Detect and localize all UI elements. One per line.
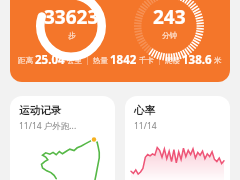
staticText: 距离: [18, 56, 33, 65]
staticText: 米: [214, 56, 222, 65]
staticText: 138.6: [182, 52, 212, 68]
staticText: 33623: [44, 4, 99, 30]
staticText: 爬楼: [165, 56, 180, 65]
button[interactable]: 分钟: [132, 0, 206, 63]
staticText: 心率: [134, 104, 155, 117]
staticText: 运动记录: [19, 104, 61, 117]
staticText: 11/14: [134, 120, 157, 132]
staticText: 1842: [110, 52, 137, 68]
staticText: 步: [68, 31, 76, 40]
staticText: 分钟: [162, 31, 177, 40]
staticText: 25.04: [35, 52, 65, 68]
staticText: 243: [153, 4, 186, 30]
button[interactable]: 运动记录: [10, 96, 115, 180]
staticText: 热量: [93, 56, 108, 65]
button[interactable]: 步: [34, 0, 108, 63]
staticText: 千卡: [139, 56, 154, 65]
staticText: 11/14 户外跑...: [19, 120, 77, 132]
staticText: 公里: [67, 56, 82, 65]
button[interactable]: 心率: [125, 96, 230, 180]
button[interactable]: 步: [10, 0, 230, 82]
